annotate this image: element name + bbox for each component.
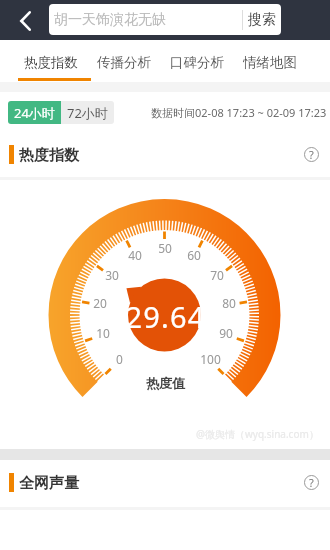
staticText: 72小时: [67, 104, 108, 122]
staticText: 胡一天饰演花无缺: [54, 11, 166, 29]
staticText: 传播分析: [97, 54, 151, 71]
button[interactable]: Help: [293, 136, 329, 172]
staticText: 情绪地图: [243, 54, 297, 71]
staticText: 80: [222, 295, 236, 311]
staticText: 100: [200, 351, 221, 367]
button[interactable]: 情绪地图: [233, 40, 306, 82]
button[interactable]: 24小时: [8, 101, 61, 124]
button[interactable]: 72小时: [61, 101, 114, 124]
staticText: 搜索: [248, 11, 276, 29]
staticText: 29.64: [125, 297, 206, 331]
staticText: 70: [210, 267, 224, 283]
staticText: 60: [187, 247, 201, 263]
staticText: 全网声量: [19, 474, 79, 493]
staticText: 10: [96, 325, 110, 341]
staticText: 90: [219, 325, 233, 341]
button[interactable]: Back: [0, 0, 49, 40]
staticText: 50: [158, 240, 172, 256]
staticText: 热度指数: [19, 146, 79, 165]
button[interactable]: Help: [293, 464, 329, 500]
staticText: 热度指数: [24, 54, 78, 71]
staticText: ?: [309, 475, 314, 490]
staticText: 0: [116, 351, 123, 367]
staticText: 24小时: [14, 104, 55, 122]
staticText: ?: [309, 147, 314, 162]
staticText: 热度值: [146, 375, 185, 391]
staticText: @微舆情（wyq.sina.com）: [196, 427, 319, 441]
staticText: 40: [128, 247, 142, 263]
button[interactable]: 传播分析: [87, 40, 160, 82]
staticText: 口碑分析: [170, 54, 224, 71]
button[interactable]: 热度指数: [14, 40, 87, 82]
button[interactable]: 搜索: [243, 4, 281, 35]
staticText: 20: [93, 295, 107, 311]
staticText: 30: [105, 267, 119, 283]
button[interactable]: 口碑分析: [160, 40, 233, 82]
staticText: 数据时间02-08 17:23 ~ 02-09 17:23: [151, 105, 327, 120]
